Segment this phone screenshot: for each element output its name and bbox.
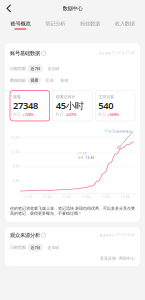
staticText: 观看总时长 bbox=[56, 94, 76, 99]
staticText: +627% bbox=[65, 112, 76, 117]
button[interactable]: 返回 bbox=[0, 1, 17, 16]
button[interactable]: 观看 bbox=[28, 77, 41, 84]
staticText: 近30日 bbox=[47, 66, 59, 71]
staticText: 近7日 bbox=[30, 245, 40, 250]
staticText: 统计周期 11-03 至 11-09 bbox=[99, 51, 135, 55]
staticText: 16.0k bbox=[11, 136, 19, 139]
button[interactable]: 收入数据 bbox=[107, 20, 142, 30]
staticText: 12.0k bbox=[11, 150, 19, 154]
staticText: 观众来源分析 bbox=[10, 232, 40, 238]
staticText: 意见反馈 · 帮助中心 bbox=[100, 255, 135, 261]
button[interactable]: 主页访客 bbox=[95, 90, 135, 121]
button[interactable]: 观看 bbox=[10, 90, 50, 121]
staticText: 粉丝数据 bbox=[80, 20, 100, 27]
button[interactable]: 观看总时长 bbox=[53, 90, 92, 121]
staticText: 你的笔记浏览量飞速上涨，笔记流转 表现也很优秀，可以多多分享点赞高的笔记，获得更… bbox=[10, 206, 135, 216]
staticText: 11月7日发布的笔记 bbox=[105, 130, 132, 133]
staticText: 540 bbox=[98, 99, 113, 112]
staticText: 日期范围 bbox=[10, 66, 26, 71]
staticText: 11-03 bbox=[23, 195, 32, 199]
staticText: 11-06 bbox=[82, 195, 91, 199]
staticText: 日期范围 bbox=[10, 245, 26, 250]
staticText: 11-07 bbox=[101, 195, 110, 199]
button[interactable]: 笔记分析 bbox=[38, 20, 73, 30]
staticText: 数据指标 bbox=[10, 78, 26, 83]
staticText: 笔记分析 bbox=[45, 20, 65, 27]
staticText: 粉丝 bbox=[60, 78, 68, 83]
staticText: +568% bbox=[108, 112, 119, 117]
button[interactable]: 近7日 bbox=[28, 65, 43, 73]
staticText: 昨日 bbox=[13, 112, 21, 117]
staticText: 观看 bbox=[78, 156, 84, 159]
staticText: 11-09 bbox=[78, 152, 87, 155]
staticText: 收入数据 bbox=[115, 20, 135, 27]
staticText: 观看 bbox=[13, 94, 21, 99]
staticText: +728% bbox=[22, 112, 33, 117]
staticText: 近30日 bbox=[47, 245, 59, 250]
staticText: 昨日 bbox=[56, 112, 64, 117]
button[interactable]: 账号概览 bbox=[3, 20, 38, 30]
button[interactable]: 近30日 bbox=[45, 65, 62, 73]
staticText: 观看 bbox=[30, 78, 38, 83]
staticText: 8.0k bbox=[13, 165, 19, 168]
button[interactable]: 粉丝 bbox=[58, 77, 71, 84]
staticText: 账号概览 bbox=[10, 20, 30, 27]
staticText: 11-05 bbox=[62, 195, 71, 199]
staticText: 13.4k bbox=[85, 156, 93, 159]
button[interactable]: 近7日 bbox=[28, 243, 43, 251]
staticText: 27348 bbox=[13, 99, 38, 112]
staticText: 账号基础数据 bbox=[10, 50, 40, 57]
staticText: 4.0k bbox=[13, 179, 19, 183]
button[interactable]: 粉丝数据 bbox=[72, 20, 107, 30]
staticText: 昨日 bbox=[98, 112, 106, 117]
staticText: 数据更新于 11-10 10:00 bbox=[100, 233, 135, 237]
staticText: 11-08 bbox=[121, 195, 130, 199]
button[interactable]: 近30日 bbox=[45, 243, 62, 251]
staticText: 11-04 bbox=[43, 195, 52, 199]
staticText: 互动 bbox=[45, 78, 53, 83]
staticText: 数据中心 bbox=[62, 5, 82, 12]
staticText: 主页访客 bbox=[98, 94, 114, 99]
button[interactable]: 互动 bbox=[43, 77, 56, 84]
staticText: 近7日 bbox=[30, 66, 40, 71]
staticText: 45小时 bbox=[56, 99, 84, 112]
